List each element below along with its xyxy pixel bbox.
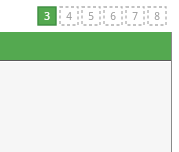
staticText: 6	[110, 9, 116, 23]
button[interactable]: 8	[148, 7, 166, 25]
button[interactable]: 5	[82, 7, 100, 25]
button[interactable]: Header	[0, 32, 172, 60]
staticText: 4	[66, 9, 72, 23]
button[interactable]: 3	[38, 7, 56, 25]
staticText: 8	[154, 9, 160, 23]
staticText: 7	[132, 9, 138, 23]
button[interactable]: 4	[60, 7, 78, 25]
staticText: 5	[88, 9, 94, 23]
staticText: 3	[44, 9, 50, 23]
button[interactable]: 7	[126, 7, 144, 25]
button[interactable]: 6	[104, 7, 122, 25]
